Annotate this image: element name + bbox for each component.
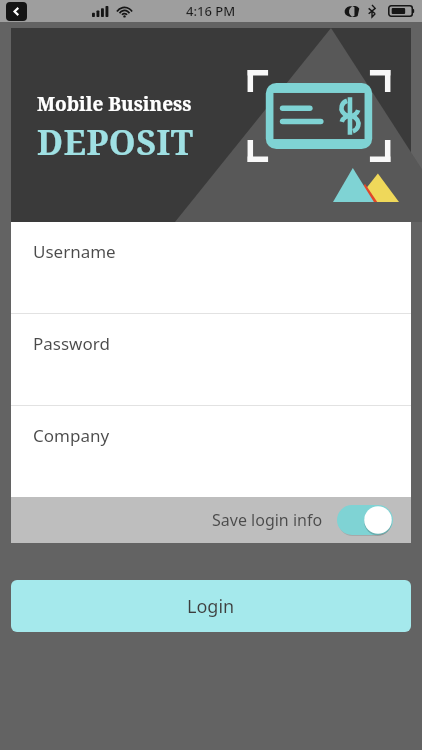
button[interactable]: Back bbox=[6, 2, 27, 21]
staticText: Password bbox=[33, 332, 110, 355]
button[interactable]: Username bbox=[11, 222, 411, 313]
staticText: Company bbox=[33, 424, 110, 447]
button[interactable]: Company bbox=[11, 406, 411, 497]
staticText: Username bbox=[33, 240, 116, 263]
staticText: Login bbox=[187, 594, 235, 619]
button[interactable]: Save login info bbox=[11, 497, 411, 543]
staticText: Save login info bbox=[212, 509, 323, 531]
staticText: 4:16 PM bbox=[186, 2, 236, 20]
button[interactable]: Login bbox=[11, 580, 411, 632]
staticText: DEPOSIT bbox=[37, 119, 194, 165]
button[interactable]: Password bbox=[11, 314, 411, 405]
staticText: Mobile Business bbox=[37, 91, 192, 117]
button[interactable]: Save login info, on bbox=[337, 505, 393, 535]
